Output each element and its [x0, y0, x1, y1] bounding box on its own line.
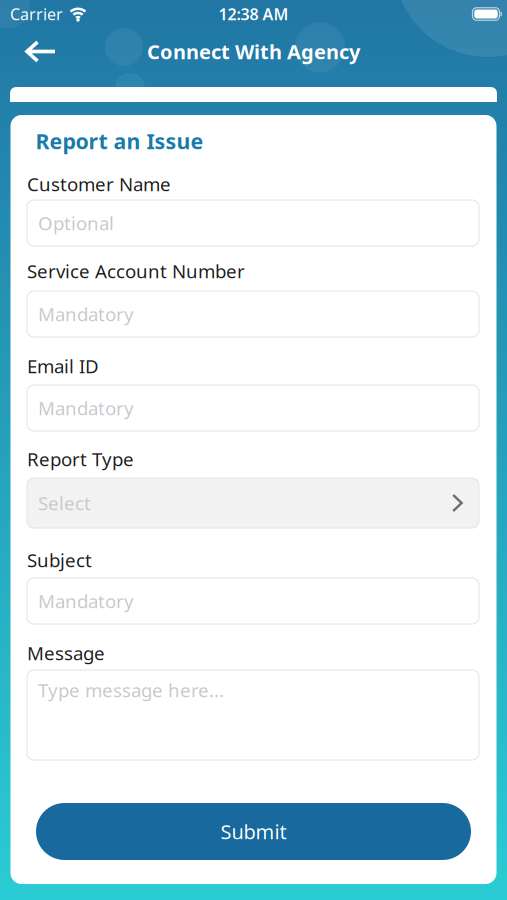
staticText: Customer Name [27, 172, 171, 196]
staticText: Report Type [27, 447, 134, 471]
staticText: Service Account Number [27, 259, 245, 283]
staticText: Type message here... [38, 678, 224, 702]
staticText: Report an Issue [35, 127, 203, 155]
staticText: Optional [38, 211, 114, 235]
staticText: Email ID [27, 354, 99, 378]
staticText: Mandatory [38, 302, 134, 326]
staticText: Submit [220, 818, 286, 845]
button[interactable]: Submit [36, 803, 471, 860]
staticText: Message [27, 641, 105, 665]
staticText: Subject [27, 548, 92, 572]
button[interactable]: Subject [27, 578, 479, 624]
staticText: Mandatory [38, 396, 134, 420]
button[interactable]: Back [0, 40, 56, 63]
staticText: Mandatory [38, 589, 134, 613]
button[interactable]: Service Account Number [27, 291, 479, 337]
staticText: Select [38, 491, 91, 515]
button[interactable]: Customer Name [27, 200, 479, 246]
button[interactable]: Message [27, 670, 479, 760]
staticText: Carrier [10, 3, 63, 25]
button[interactable]: Email ID [27, 385, 479, 431]
staticText: 12:38 AM [218, 3, 288, 25]
staticText: Connect With Agency [147, 38, 360, 65]
button[interactable]: Report Type [27, 478, 479, 528]
